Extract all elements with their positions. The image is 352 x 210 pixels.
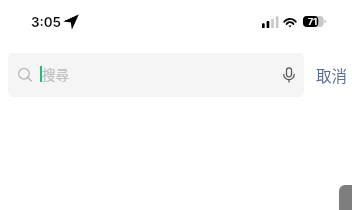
- staticText: 71: [308, 16, 317, 27]
- staticText: 取消: [316, 64, 348, 86]
- staticText: 搜尋: [42, 64, 69, 84]
- button[interactable]: Voice search: [273, 53, 304, 97]
- staticText: 3:05: [31, 14, 62, 30]
- button[interactable]: 搜尋: [8, 53, 304, 97]
- button[interactable]: 取消: [309, 53, 352, 97]
